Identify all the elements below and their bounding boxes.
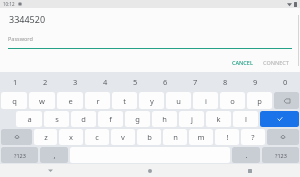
staticText: CANCEL <box>232 59 253 66</box>
staticText: 3 <box>73 77 78 87</box>
staticText: ?123 <box>275 152 287 159</box>
button[interactable]: , <box>40 147 68 163</box>
button[interactable]: v <box>111 129 135 145</box>
staticText: a <box>27 114 32 124</box>
button[interactable]: r <box>85 92 110 109</box>
button[interactable]: 5 <box>120 72 150 91</box>
button[interactable]: q <box>1 92 27 109</box>
staticText: . <box>245 150 248 160</box>
button[interactable]: 0 <box>270 72 300 91</box>
button[interactable]: e <box>57 92 83 109</box>
button[interactable]: Recents <box>200 164 300 177</box>
button[interactable]: CANCEL <box>229 57 256 68</box>
staticText: r <box>96 96 100 106</box>
button[interactable]: l <box>233 111 258 127</box>
button[interactable]: p <box>247 92 272 109</box>
staticText: f <box>109 114 112 124</box>
button[interactable]: s <box>44 111 69 127</box>
button[interactable]: b <box>137 129 161 145</box>
staticText: u <box>176 96 181 106</box>
staticText: y <box>150 96 154 106</box>
button[interactable]: n <box>163 129 187 145</box>
staticText: s <box>55 114 59 124</box>
staticText: t <box>123 96 126 106</box>
button[interactable]: 1 <box>0 72 30 91</box>
button[interactable]: h <box>152 111 177 127</box>
button[interactable]: m <box>189 129 213 145</box>
button[interactable]: x <box>59 129 83 145</box>
staticText: 5 <box>133 77 138 87</box>
staticText: ! <box>226 132 229 142</box>
staticText: e <box>68 96 73 106</box>
staticText: 3344520 <box>9 13 46 25</box>
staticText: ? <box>251 132 255 142</box>
button[interactable]: 2 <box>30 72 60 91</box>
staticText: 2 <box>43 77 48 87</box>
button[interactable]: f <box>98 111 123 127</box>
button[interactable]: . <box>232 147 260 163</box>
button[interactable]: Enter <box>260 111 299 127</box>
button[interactable]: k <box>206 111 231 127</box>
button[interactable]: 6 <box>150 72 180 91</box>
staticText: d <box>81 114 86 124</box>
button[interactable]: 4 <box>90 72 120 91</box>
staticText: 1 <box>13 77 18 87</box>
button[interactable]: Home <box>100 164 200 177</box>
button[interactable]: a <box>16 111 42 127</box>
staticText: b <box>147 132 152 142</box>
button[interactable]: Backspace <box>274 92 299 109</box>
staticText: o <box>230 96 235 106</box>
staticText: p <box>257 96 262 106</box>
button[interactable]: CONNECT <box>260 57 292 68</box>
button[interactable]: 3 <box>60 72 90 91</box>
button[interactable]: Back <box>0 164 100 177</box>
staticText: l <box>245 114 247 124</box>
staticText: h <box>162 114 167 124</box>
staticText: 9 <box>253 77 258 87</box>
button[interactable]: ! <box>215 129 239 145</box>
button[interactable]: 7 <box>180 72 210 91</box>
button[interactable]: u <box>166 92 191 109</box>
button[interactable]: c <box>85 129 109 145</box>
button[interactable]: g <box>125 111 150 127</box>
button[interactable]: i <box>193 92 218 109</box>
staticText: j <box>191 114 193 124</box>
button[interactable]: w <box>29 92 55 109</box>
button[interactable]: t <box>112 92 137 109</box>
button[interactable]: ?123 <box>1 147 38 163</box>
staticText: Password <box>8 35 33 42</box>
button[interactable]: 9 <box>240 72 270 91</box>
staticText: g <box>135 114 140 124</box>
staticText: v <box>121 132 125 142</box>
staticText: 4 <box>103 77 108 87</box>
button[interactable]: Shift <box>267 129 299 145</box>
button[interactable]: ?123 <box>262 147 299 163</box>
button[interactable]: Password <box>8 35 292 49</box>
button[interactable]: 8 <box>210 72 240 91</box>
staticText: ?123 <box>14 152 26 159</box>
button[interactable]: Shift <box>1 129 32 145</box>
button[interactable]: ? <box>241 129 265 145</box>
staticText: 6 <box>163 77 168 87</box>
staticText: k <box>216 114 221 124</box>
staticText: 8 <box>223 77 228 87</box>
staticText: x <box>69 132 73 142</box>
button[interactable]: y <box>139 92 164 109</box>
staticText: 7 <box>193 77 198 87</box>
button[interactable]: o <box>220 92 245 109</box>
button[interactable]: z <box>34 129 57 145</box>
staticText: 10:12 <box>3 1 15 7</box>
staticText: q <box>12 96 17 106</box>
button[interactable]: d <box>71 111 96 127</box>
staticText: c <box>95 132 99 142</box>
staticText: i <box>205 96 207 106</box>
staticText: n <box>173 132 178 142</box>
staticText: 0 <box>283 77 288 87</box>
staticText: z <box>44 132 48 142</box>
staticText: m <box>197 132 205 142</box>
button[interactable]: j <box>179 111 204 127</box>
staticText: , <box>53 150 56 160</box>
staticText: CONNECT <box>263 59 289 66</box>
